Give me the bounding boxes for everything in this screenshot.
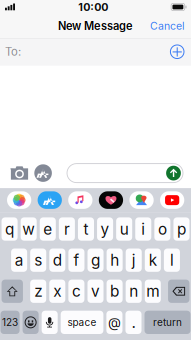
- button[interactable]: p: [173, 217, 189, 241]
- button[interactable]: m: [145, 280, 161, 303]
- button[interactable]: .: [125, 311, 141, 334]
- button[interactable]: e: [40, 217, 56, 241]
- staticText: v: [91, 282, 100, 301]
- button[interactable]: w: [21, 217, 37, 241]
- staticText: h: [110, 251, 119, 269]
- staticText: k: [149, 251, 157, 269]
- staticText: a: [15, 251, 24, 269]
- staticText: space: [67, 316, 96, 328]
- button[interactable]: j: [126, 248, 142, 272]
- staticText: s: [34, 251, 42, 269]
- staticText: o: [158, 220, 167, 238]
- staticText: p: [177, 220, 186, 238]
- button[interactable]: s: [30, 248, 46, 272]
- staticText: j: [132, 251, 136, 269]
- button[interactable]: g: [87, 248, 104, 272]
- button[interactable]: Message field: [52, 158, 191, 188]
- button[interactable]: x: [49, 280, 65, 303]
- button[interactable]: q: [2, 217, 18, 241]
- staticText: return: [153, 316, 182, 328]
- button[interactable]: z: [30, 280, 46, 303]
- staticText: To:: [5, 45, 21, 59]
- button[interactable]: d: [49, 248, 65, 272]
- staticText: t: [83, 220, 88, 238]
- staticText: y: [101, 220, 110, 238]
- button[interactable]: n: [126, 280, 142, 303]
- button[interactable]: space: [61, 311, 103, 334]
- button[interactable]: return: [144, 311, 190, 334]
- button[interactable]: Add contact: [164, 38, 190, 65]
- staticText: .: [131, 313, 135, 332]
- staticText: g: [91, 251, 100, 269]
- button[interactable]: Camera: [0, 158, 34, 188]
- button[interactable]: a: [11, 248, 27, 272]
- staticText: i: [141, 220, 145, 238]
- button[interactable]: h: [107, 248, 123, 272]
- staticText: 10:00: [78, 0, 108, 13]
- button[interactable]: Music: [68, 191, 92, 209]
- button[interactable]: i: [135, 217, 151, 241]
- staticText: @: [108, 314, 121, 330]
- button[interactable]: Maps: [129, 191, 154, 209]
- button[interactable]: l: [164, 248, 180, 272]
- button[interactable]: k: [145, 248, 161, 272]
- button[interactable]: Digital Touch: [99, 191, 123, 209]
- button[interactable]: Photos: [7, 191, 31, 209]
- staticText: b: [110, 282, 119, 301]
- staticText: w: [22, 220, 35, 238]
- button[interactable]: b: [107, 280, 123, 303]
- staticText: New Message: [58, 19, 133, 33]
- staticText: z: [34, 282, 42, 301]
- staticText: f: [73, 251, 79, 269]
- button[interactable]: @: [106, 311, 122, 334]
- staticText: 123: [2, 316, 18, 328]
- staticText: Cancel: [150, 20, 185, 32]
- button[interactable]: f: [68, 248, 84, 272]
- staticText: q: [5, 220, 14, 238]
- staticText: r: [64, 220, 70, 238]
- button[interactable]: t: [78, 217, 94, 241]
- button[interactable]: r: [59, 217, 75, 241]
- button[interactable]: YouTube: [160, 191, 184, 209]
- button[interactable]: u: [116, 217, 132, 241]
- button[interactable]: Apps: [34, 158, 52, 188]
- staticText: e: [43, 220, 52, 238]
- button[interactable]: Shift: [1, 280, 23, 303]
- button[interactable]: Delete: [168, 280, 189, 303]
- button[interactable]: o: [154, 217, 170, 241]
- staticText: m: [146, 282, 159, 301]
- button[interactable]: c: [68, 280, 84, 303]
- staticText: d: [53, 251, 62, 269]
- staticText: c: [72, 282, 81, 301]
- staticText: l: [170, 251, 174, 269]
- staticText: x: [53, 282, 61, 301]
- button[interactable]: y: [97, 217, 113, 241]
- button[interactable]: Cancel: [142, 14, 191, 38]
- button[interactable]: Emoji: [23, 311, 39, 334]
- staticText: u: [120, 220, 129, 238]
- button[interactable]: Dictate: [42, 311, 58, 334]
- staticText: n: [129, 282, 138, 301]
- button[interactable]: 123: [0, 311, 20, 334]
- button[interactable]: v: [87, 280, 104, 303]
- button[interactable]: App Store: [38, 191, 62, 209]
